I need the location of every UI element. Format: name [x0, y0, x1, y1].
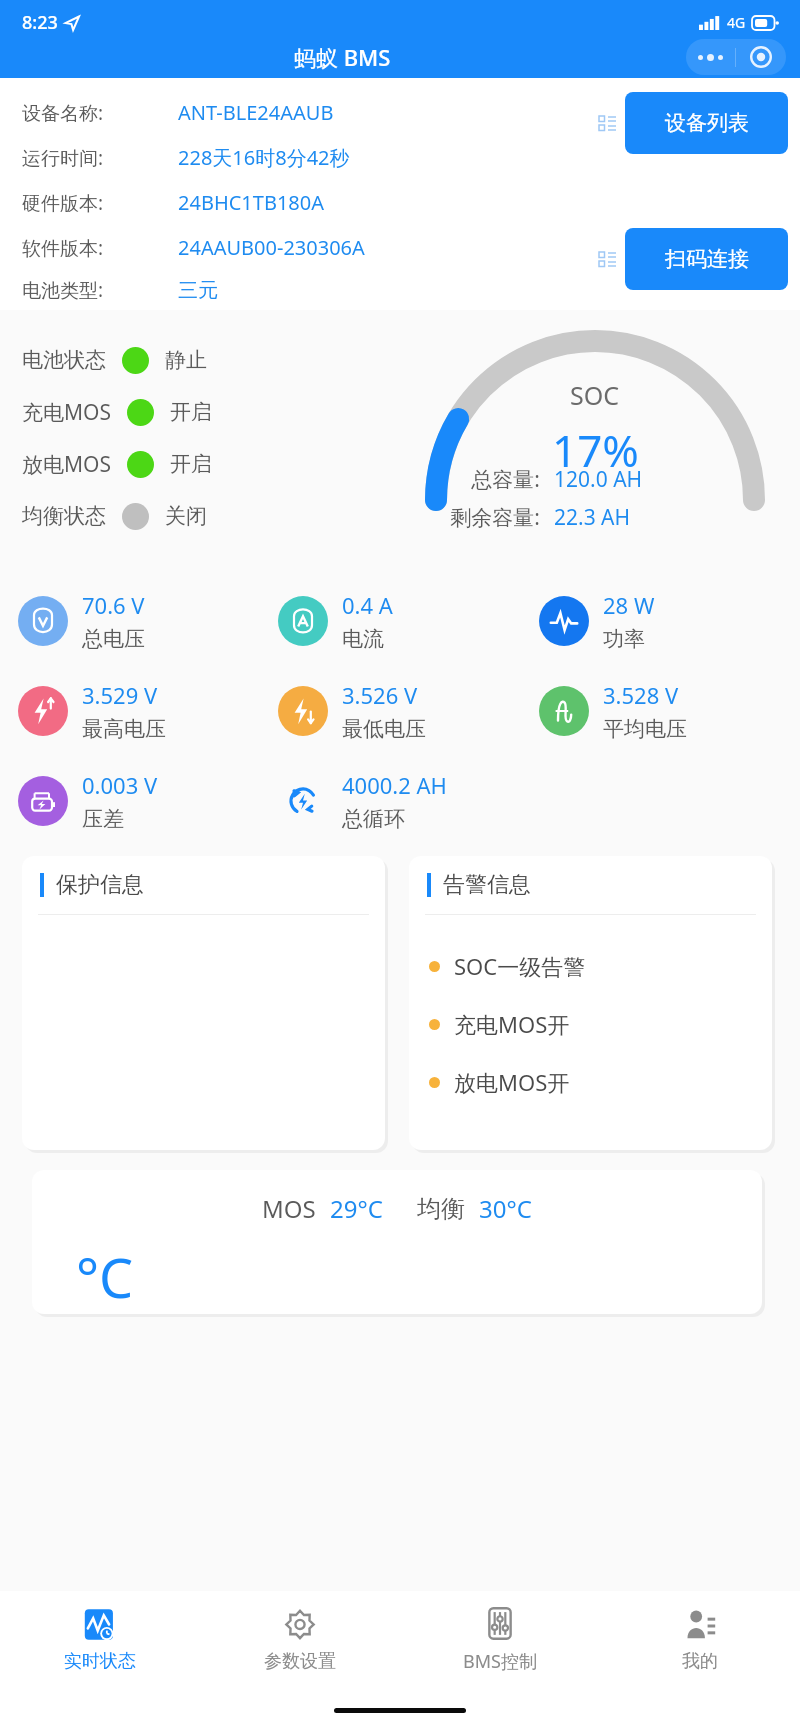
staticText: 29°C [330, 1192, 383, 1225]
staticText: 硬件版本: [22, 190, 104, 216]
staticText: 均衡状态 [22, 503, 106, 529]
staticText: MOS [262, 1192, 316, 1225]
staticText: 充电MOS [22, 398, 111, 427]
staticText: 放电MOS [22, 450, 111, 479]
staticText: 最低电压 [342, 716, 426, 742]
staticText: °C [76, 1240, 134, 1314]
staticText: 放电MOS开 [454, 1067, 570, 1097]
staticText: 70.6 V [82, 590, 145, 620]
staticText: 28 W [603, 590, 655, 620]
button[interactable]: 实时状态 [0, 1591, 200, 1689]
staticText: 我的 [682, 1650, 718, 1673]
staticText: 软件版本: [22, 235, 104, 261]
button[interactable]: More options [686, 39, 786, 75]
staticText: 功率 [603, 626, 645, 652]
button[interactable]: 放电MOS [22, 438, 212, 490]
staticText: 总电压 [82, 626, 145, 652]
button[interactable]: 3.528 V [539, 680, 800, 742]
staticText: ANT-BLE24AAUB [178, 99, 334, 126]
staticText: 设备列表 [665, 110, 749, 136]
staticText: 24AAUB00-230306A [178, 234, 365, 261]
staticText: 充电MOS开 [454, 1009, 570, 1039]
staticText: 0.003 V [82, 770, 158, 800]
staticText: 120.0 AH [554, 465, 643, 494]
staticText: 3.526 V [342, 680, 418, 710]
staticText: 静止 [165, 347, 207, 373]
button[interactable]: 告警信息 [409, 856, 772, 1150]
staticText: SOC一级告警 [454, 951, 586, 981]
staticText: 电池类型: [22, 277, 104, 303]
staticText: 关闭 [165, 503, 207, 529]
button[interactable]: 我的 [600, 1591, 800, 1689]
staticText: 平均电压 [603, 716, 687, 742]
staticText: BMS控制 [463, 1649, 537, 1674]
staticText: 30°C [479, 1192, 532, 1225]
staticText: 电流 [342, 626, 384, 652]
staticText: 电池状态 [22, 347, 106, 373]
staticText: 3.529 V [82, 680, 158, 710]
button[interactable]: MOS [32, 1170, 762, 1314]
staticText: 最高电压 [82, 716, 166, 742]
button[interactable]: 0.4 A [278, 590, 539, 652]
staticText: 8:23 [22, 10, 58, 35]
button[interactable]: 4000.2 AH [278, 770, 539, 832]
button[interactable]: 扫码连接 [625, 228, 788, 290]
staticText: 3.528 V [603, 680, 679, 710]
staticText: 告警信息 [443, 871, 531, 899]
staticText: 实时状态 [64, 1650, 136, 1673]
staticText: 开启 [170, 399, 212, 425]
staticText: 17% [552, 420, 639, 480]
staticText: 剩余容量: [390, 503, 540, 532]
button[interactable]: 3.526 V [278, 680, 539, 742]
button[interactable]: 28 W [539, 590, 800, 652]
button[interactable]: BMS控制 [400, 1591, 600, 1689]
staticText: 开启 [170, 451, 212, 477]
staticText: 均衡 [417, 1194, 465, 1224]
staticText: 4000.2 AH [342, 770, 447, 800]
staticText: 压差 [82, 806, 124, 832]
staticText: 三元 [178, 278, 218, 303]
staticText: 228天16时8分42秒 [178, 144, 350, 171]
staticText: 24BHC1TB180A [178, 189, 324, 216]
staticText: 设备名称: [22, 100, 104, 126]
staticText: 22.3 AH [554, 503, 631, 532]
staticText: 蚂蚁 BMS [294, 42, 391, 72]
staticText: 总循环 [342, 806, 405, 832]
staticText: 总容量: [390, 465, 540, 494]
button[interactable]: 均衡状态 [22, 490, 207, 542]
button[interactable]: 0.003 V [18, 770, 278, 832]
staticText: 保护信息 [56, 871, 144, 899]
button[interactable]: 电池状态 [22, 334, 207, 386]
button[interactable]: 3.529 V [18, 680, 278, 742]
other: More options [686, 54, 735, 61]
other: Close mini program [736, 46, 786, 68]
staticText: 参数设置 [264, 1650, 336, 1673]
staticText: SOC [570, 378, 620, 412]
staticText: 0.4 A [342, 590, 393, 620]
button[interactable]: 充电MOS [22, 386, 212, 438]
button[interactable]: 参数设置 [200, 1591, 400, 1689]
staticText: 运行时间: [22, 145, 104, 171]
button[interactable]: 设备列表 [625, 92, 788, 154]
staticText: 扫码连接 [665, 246, 749, 272]
staticText: 4G [727, 13, 746, 32]
button[interactable]: 70.6 V [18, 590, 278, 652]
button[interactable]: 保护信息 [22, 856, 385, 1150]
